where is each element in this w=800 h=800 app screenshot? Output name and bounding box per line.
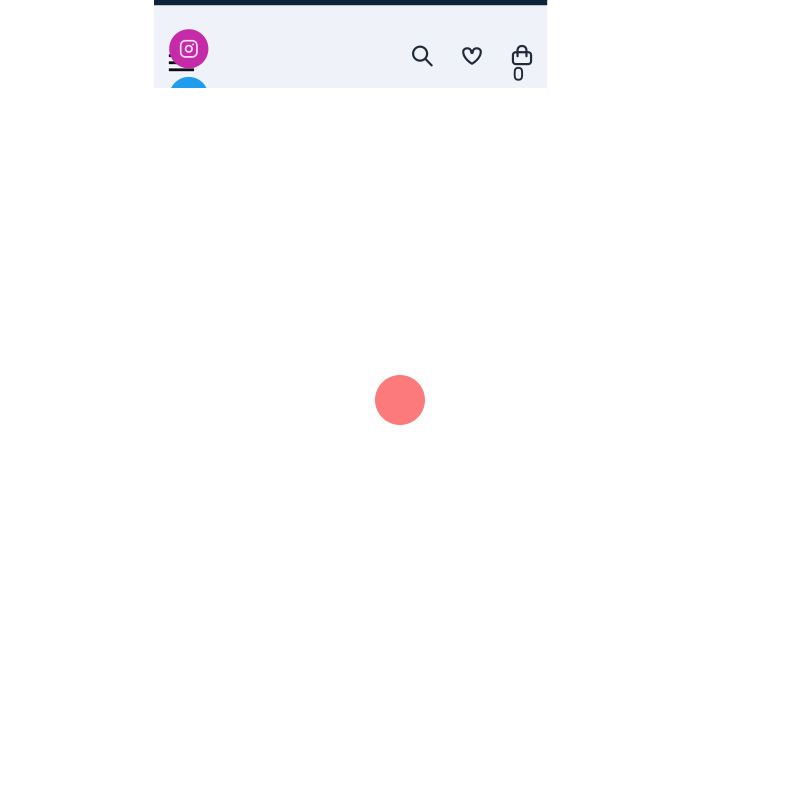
button[interactable]: Instagram	[169, 29, 208, 68]
button[interactable]: Search	[405, 38, 441, 74]
button[interactable]: Cart, 0 items	[504, 44, 540, 86]
button[interactable]: Wishlist	[455, 40, 489, 72]
button[interactable]: Share	[169, 77, 208, 116]
button[interactable]: Menu	[168, 53, 195, 72]
